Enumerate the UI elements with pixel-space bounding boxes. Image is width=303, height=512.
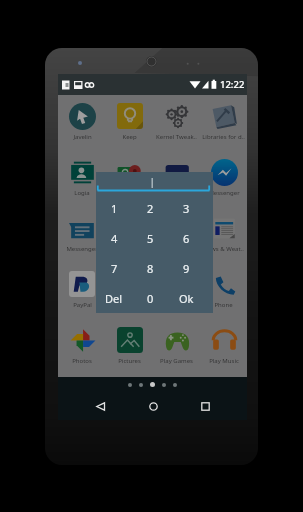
button[interactable]: PayPal	[58, 268, 106, 324]
staticText: Kernel Tweak..	[156, 133, 197, 141]
staticText: Phone	[214, 301, 233, 309]
staticText: Play Games	[160, 357, 193, 365]
button[interactable]: 2	[132, 194, 168, 223]
staticText: 7	[111, 261, 118, 276]
button[interactable]: Back	[89, 395, 111, 417]
button[interactable]: Messages	[153, 156, 200, 212]
button[interactable]: Messenger	[58, 212, 106, 268]
button[interactable]: 7	[96, 253, 132, 283]
staticText: PayPal	[73, 301, 92, 309]
staticText: Play Music	[209, 357, 239, 365]
button[interactable]: 5	[132, 223, 168, 253]
button[interactable]: Del	[96, 283, 132, 313]
staticText: 2	[147, 201, 154, 216]
button[interactable]: Pictures	[106, 324, 153, 380]
button[interactable]: News & Weat..	[200, 212, 247, 268]
button[interactable]: Messenger	[200, 156, 247, 212]
button[interactable]: Kernel Tweak..	[153, 100, 200, 156]
button[interactable]: 4	[96, 223, 132, 253]
button[interactable]: Javelin	[58, 100, 106, 156]
staticText: Phone	[167, 301, 186, 309]
button[interactable]: 3	[168, 194, 204, 223]
button[interactable]: Recent apps	[194, 395, 216, 417]
staticText: Messenger	[208, 189, 240, 197]
staticText: Maps	[122, 189, 138, 197]
button[interactable]: Play Games	[153, 324, 200, 380]
button[interactable]: 1	[96, 194, 132, 223]
button[interactable]: Home	[142, 395, 164, 417]
button[interactable]: Phone	[153, 268, 200, 324]
button[interactable]: Phone	[200, 268, 247, 324]
staticText: Ok	[179, 291, 194, 306]
staticText: Photos	[72, 357, 92, 365]
staticText: 3	[183, 201, 190, 216]
button[interactable]: 8	[132, 253, 168, 283]
staticText: Pencil	[121, 301, 138, 309]
staticText: Del	[105, 291, 123, 306]
button[interactable]: Maps	[106, 156, 153, 212]
button[interactable]: Pencil	[106, 268, 153, 324]
staticText: Messages	[163, 189, 191, 197]
button[interactable]: 0	[132, 283, 168, 313]
button[interactable]: Music	[106, 212, 153, 268]
staticText: News & Weat..	[203, 245, 244, 253]
staticText: 4	[111, 231, 118, 246]
staticText: 5	[147, 231, 154, 246]
staticText: 0	[147, 291, 154, 306]
staticText: 9	[183, 261, 190, 276]
button[interactable]: News	[153, 212, 200, 268]
staticText: 6	[183, 231, 190, 246]
staticText: Logia	[74, 189, 90, 197]
staticText: 1	[111, 201, 118, 216]
button[interactable]: Keep	[106, 100, 153, 156]
staticText: Keep	[122, 133, 137, 141]
button[interactable]: Logia	[58, 156, 106, 212]
staticText: Messenger	[66, 245, 98, 253]
button[interactable]: Ok	[168, 283, 204, 313]
staticText: Pictures	[118, 357, 141, 365]
staticText: 8	[147, 261, 154, 276]
button[interactable]: 9	[168, 253, 204, 283]
staticText: Javelin	[73, 133, 92, 141]
staticText: Libraries for d..	[202, 133, 245, 141]
button[interactable]: Libraries for d..	[200, 100, 247, 156]
button[interactable]: Play Music	[200, 324, 247, 380]
button[interactable]: 6	[168, 223, 204, 253]
button[interactable]: Photos	[58, 324, 106, 380]
staticText: 12:22	[220, 78, 245, 91]
